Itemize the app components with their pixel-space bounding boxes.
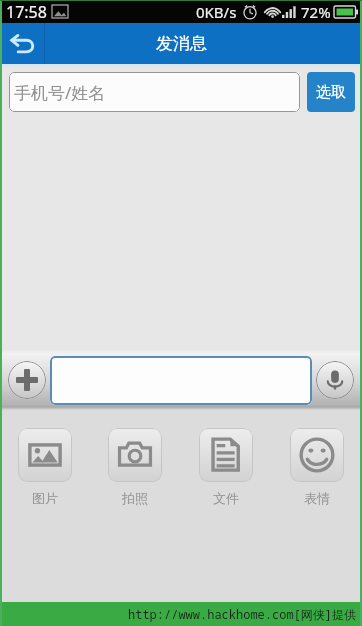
staticText: http://www.hackhome.com[网侠]提供	[128, 606, 357, 622]
staticText: 表情	[304, 490, 330, 506]
staticText: 拍照	[122, 490, 148, 506]
button[interactable]: 选取	[307, 72, 355, 112]
staticText: 手机号/姓名	[14, 81, 106, 104]
staticText: 0KB/s	[196, 2, 237, 22]
button[interactable]: 手机号/姓名	[9, 72, 300, 112]
button[interactable]: 拍照	[90, 428, 180, 506]
button[interactable]: Add	[8, 361, 46, 399]
staticText: 文件	[213, 490, 239, 506]
staticText: 17:58	[6, 1, 47, 23]
staticText: 72%	[301, 2, 331, 22]
button[interactable]	[50, 356, 312, 405]
button[interactable]: Back	[0, 23, 44, 64]
button[interactable]: 表情	[271, 428, 362, 506]
staticText: 发消息	[156, 33, 207, 54]
button[interactable]: Voice input	[316, 361, 354, 399]
staticText: 选取	[316, 83, 346, 102]
button[interactable]: 文件	[180, 428, 271, 506]
staticText: 图片	[32, 490, 58, 506]
button[interactable]: 图片	[0, 428, 90, 506]
